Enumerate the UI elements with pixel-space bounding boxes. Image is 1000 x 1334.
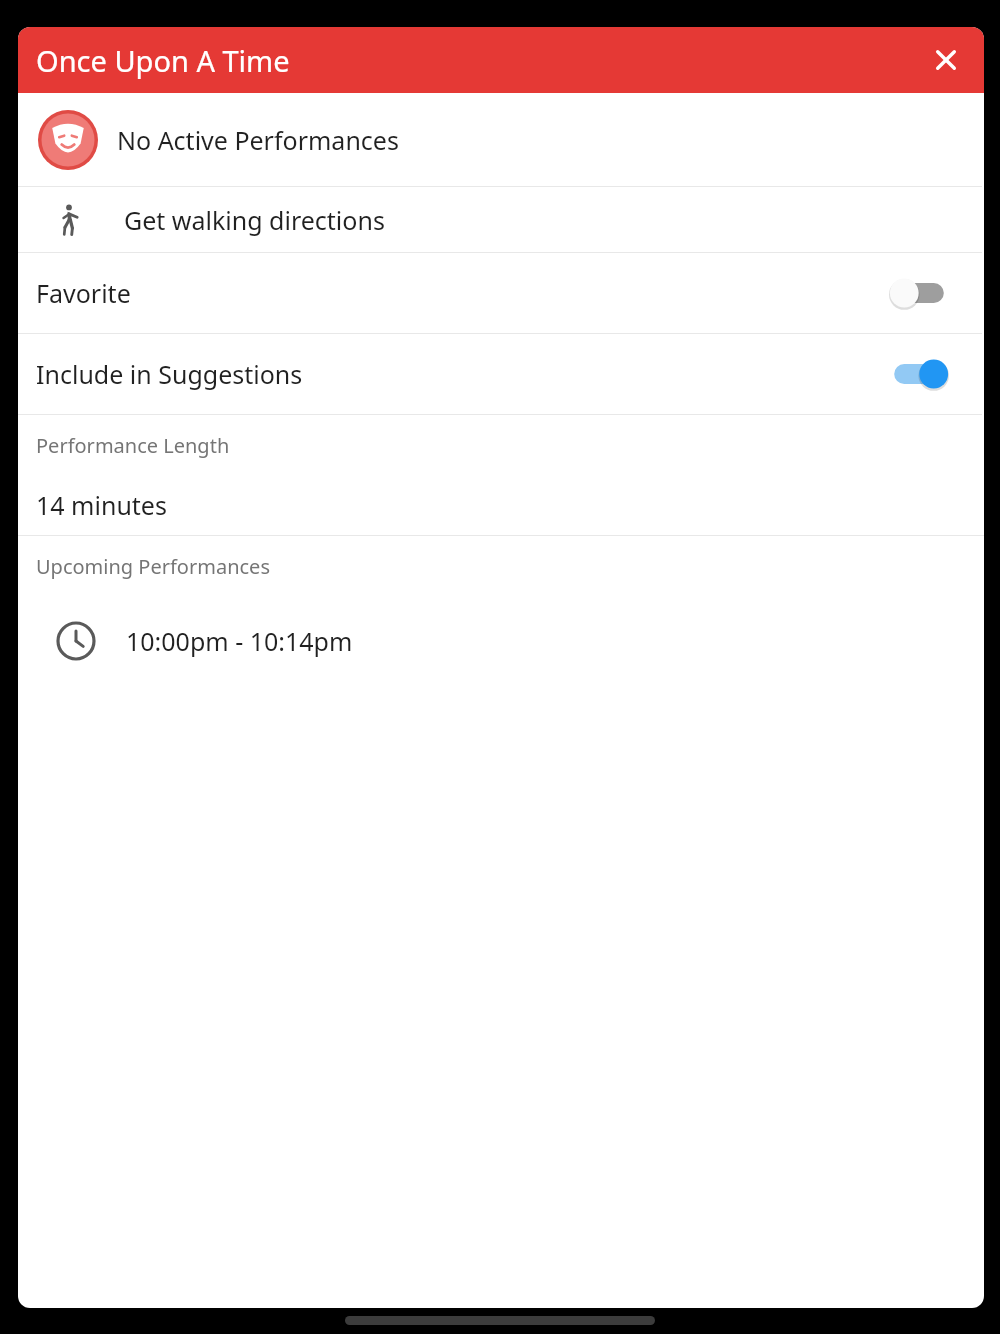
staticText: Favorite (36, 276, 888, 310)
button[interactable]: Close (922, 36, 970, 84)
button[interactable]: No Active Performances (18, 93, 984, 186)
staticText: Include in Suggestions (36, 357, 888, 391)
button[interactable]: Get walking directions (18, 187, 984, 252)
button[interactable]: Include in Suggestions (18, 334, 984, 414)
staticText: 14 minutes (36, 488, 167, 522)
staticText: Get walking directions (124, 203, 385, 237)
staticText: Once Upon A Time (36, 41, 290, 80)
staticText: Upcoming Performances (36, 553, 270, 580)
staticText: No Active Performances (117, 123, 399, 157)
button[interactable]: Favorite (18, 253, 984, 333)
button[interactable]: 10:00pm - 10:14pm (18, 596, 984, 686)
staticText: 10:00pm - 10:14pm (126, 624, 353, 658)
staticText: Performance Length (36, 432, 230, 459)
